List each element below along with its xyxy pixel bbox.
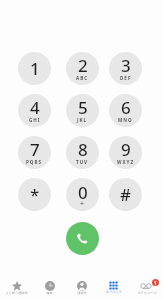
- button[interactable]: 0: [66, 178, 99, 211]
- staticText: #: [120, 183, 131, 206]
- staticText: WXYZ: [117, 159, 135, 165]
- button[interactable]: 8: [66, 136, 99, 169]
- staticText: 8: [78, 138, 88, 161]
- staticText: 4: [30, 96, 40, 119]
- staticText: 1: [154, 280, 157, 286]
- button[interactable]: #: [109, 178, 142, 211]
- staticText: GHI: [29, 117, 41, 123]
- button[interactable]: 7: [18, 136, 51, 169]
- staticText: 6: [121, 96, 131, 119]
- staticText: 1: [30, 57, 40, 80]
- button[interactable]: 9: [109, 136, 142, 169]
- staticText: +: [80, 199, 85, 209]
- button[interactable]: Call: [66, 222, 99, 255]
- staticText: 7: [30, 138, 40, 161]
- staticText: ABC: [76, 75, 89, 81]
- staticText: 0: [78, 181, 88, 204]
- button[interactable]: 2: [66, 52, 99, 85]
- staticText: 履歴: [46, 291, 53, 295]
- button[interactable]: キーパッド: [98, 275, 129, 300]
- staticText: MNO: [118, 117, 133, 123]
- staticText: 2: [78, 54, 88, 77]
- staticText: よく使う連絡先: [5, 291, 28, 295]
- button[interactable]: 3: [109, 52, 142, 85]
- staticText: *: [30, 183, 40, 206]
- staticText: キーパッド: [106, 290, 122, 294]
- staticText: JKL: [77, 117, 88, 123]
- staticText: PQRS: [26, 159, 43, 165]
- button[interactable]: 4: [18, 94, 51, 127]
- button[interactable]: 1: [131, 275, 162, 300]
- button[interactable]: 5: [66, 94, 99, 127]
- staticText: 連絡先: [77, 291, 87, 295]
- staticText: 9: [121, 138, 131, 161]
- button[interactable]: *: [18, 178, 51, 211]
- button[interactable]: よく使う連絡先: [1, 275, 32, 300]
- staticText: 5: [78, 96, 88, 119]
- button[interactable]: 連絡先: [66, 275, 97, 300]
- staticText: 3: [121, 54, 131, 77]
- staticText: TUV: [76, 159, 89, 165]
- staticText: ボイスメール: [137, 291, 157, 295]
- button[interactable]: 履歴: [34, 275, 65, 300]
- button[interactable]: 1: [18, 52, 51, 85]
- staticText: DEF: [120, 75, 132, 81]
- button[interactable]: 6: [109, 94, 142, 127]
